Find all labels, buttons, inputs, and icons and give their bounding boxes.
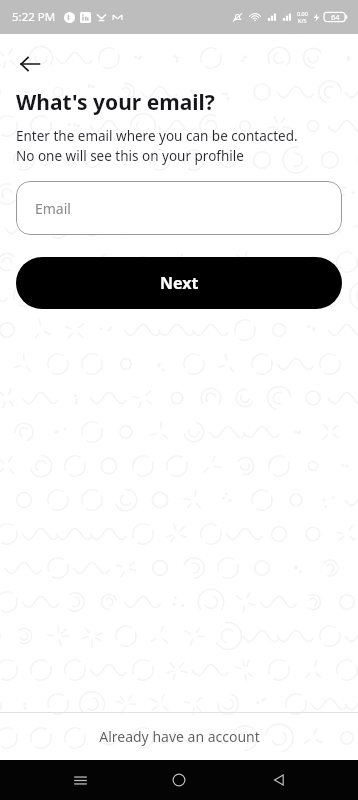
button[interactable]: Back	[8, 42, 52, 86]
button[interactable]: Email	[16, 181, 342, 235]
staticText: Next	[160, 272, 199, 294]
staticText: Enter the email where you can be contact…	[16, 127, 298, 165]
button[interactable]: Already have an account	[0, 713, 358, 760]
button[interactable]: Recents	[60, 760, 100, 800]
button[interactable]: Next	[16, 257, 342, 309]
staticText: Email	[35, 199, 71, 218]
staticText: 0.00	[297, 10, 308, 17]
button[interactable]: Home	[159, 760, 199, 800]
staticText: What's your email?	[16, 88, 215, 117]
staticText: 64	[331, 12, 340, 22]
staticText: Already have an account	[99, 727, 260, 746]
staticText: 5:22 PM	[12, 9, 56, 25]
staticText: K/S	[298, 17, 307, 24]
button[interactable]: Back	[259, 760, 299, 800]
